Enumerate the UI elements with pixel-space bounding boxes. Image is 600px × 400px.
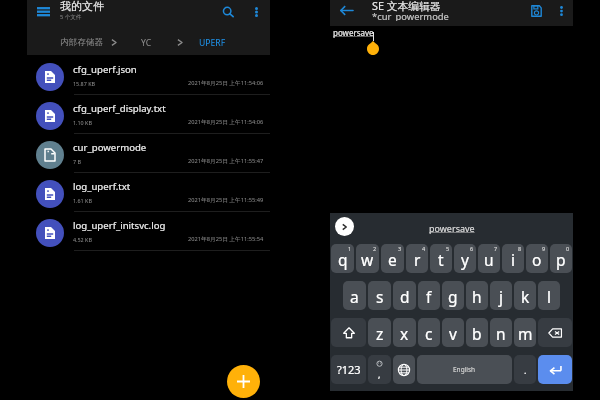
staticText: l bbox=[547, 286, 551, 307]
staticText: y bbox=[461, 249, 469, 270]
button[interactable]: 内部存储器 bbox=[60, 37, 103, 48]
button[interactable]: k bbox=[514, 281, 536, 310]
button[interactable]: YC bbox=[141, 37, 152, 49]
button[interactable]: Back bbox=[334, 0, 358, 21]
button[interactable]: Backspace bbox=[538, 318, 572, 347]
button[interactable]: f bbox=[418, 281, 440, 310]
staticText: u bbox=[484, 249, 494, 270]
button[interactable]: Change language bbox=[393, 355, 415, 384]
button[interactable]: English bbox=[417, 355, 512, 384]
button[interactable]: d bbox=[393, 281, 416, 310]
button[interactable]: More options bbox=[550, 0, 572, 22]
button[interactable]: 8 bbox=[502, 244, 524, 273]
button[interactable]: h bbox=[466, 281, 488, 310]
staticText: 4.52 KB bbox=[73, 236, 92, 243]
button[interactable]: v bbox=[442, 318, 464, 347]
staticText: q bbox=[338, 249, 348, 270]
button[interactable]: l bbox=[538, 281, 560, 310]
staticText: 6 bbox=[470, 245, 474, 252]
staticText: k bbox=[521, 286, 530, 307]
staticText: v bbox=[449, 323, 457, 344]
button[interactable]: Add bbox=[227, 365, 260, 398]
staticText: z bbox=[376, 323, 384, 344]
staticText: x bbox=[400, 323, 409, 344]
button[interactable]: Menu bbox=[32, 0, 54, 22]
staticText: cur_powermode bbox=[73, 141, 147, 154]
staticText: ?123 bbox=[337, 362, 361, 377]
staticText: 3 bbox=[398, 245, 402, 252]
button[interactable]: log_uperf.txt bbox=[27, 173, 270, 211]
staticText: cfg_uperf_display.txt bbox=[73, 102, 166, 115]
button[interactable]: 7 bbox=[478, 244, 500, 273]
staticText: 7 bbox=[494, 245, 498, 252]
button[interactable]: 0 bbox=[550, 244, 572, 273]
staticText: j bbox=[499, 286, 503, 307]
button[interactable]: 5 bbox=[430, 244, 452, 273]
staticText: SE 文本编辑器 bbox=[372, 0, 441, 13]
button[interactable]: z bbox=[368, 318, 391, 347]
staticText: 2 bbox=[373, 245, 377, 252]
staticText: log_uperf.txt bbox=[73, 180, 131, 193]
button[interactable]: Save bbox=[524, 1, 548, 21]
staticText: , bbox=[378, 368, 381, 380]
staticText: YC bbox=[141, 37, 152, 49]
staticText: g bbox=[448, 286, 458, 307]
staticText: *cur_powermode bbox=[372, 10, 449, 21]
staticText: English bbox=[453, 365, 476, 374]
staticText: 1.10 KB bbox=[73, 119, 92, 126]
staticText: i bbox=[511, 249, 515, 270]
staticText: 1.61 KB bbox=[73, 197, 92, 204]
staticText: 8 bbox=[518, 245, 522, 252]
staticText: . bbox=[524, 364, 527, 376]
staticText: p bbox=[556, 249, 566, 270]
button[interactable]: 1 bbox=[331, 244, 354, 273]
button[interactable]: More options bbox=[244, 0, 268, 24]
staticText: 4 bbox=[422, 245, 426, 252]
button[interactable]: c bbox=[418, 318, 440, 347]
button[interactable]: log_uperf_initsvc.log bbox=[27, 212, 270, 250]
button[interactable]: g bbox=[442, 281, 464, 310]
staticText: t bbox=[438, 249, 444, 270]
button[interactable]: Expand suggestions bbox=[335, 217, 354, 236]
button[interactable]: Enter bbox=[538, 355, 572, 384]
staticText: r bbox=[414, 249, 421, 270]
button[interactable]: 6 bbox=[454, 244, 476, 273]
staticText: 2021年8月25日 上午11:55:54 bbox=[188, 235, 264, 243]
button[interactable]: cfg_uperf_display.txt bbox=[27, 95, 270, 133]
button[interactable]: b bbox=[466, 318, 488, 347]
staticText: cfg_uperf.json bbox=[73, 63, 137, 76]
staticText: n bbox=[496, 323, 506, 344]
button[interactable]: n bbox=[490, 318, 512, 347]
staticText: 7 B bbox=[73, 158, 81, 165]
staticText: a bbox=[350, 286, 359, 307]
button[interactable]: Shift bbox=[331, 318, 366, 347]
staticText: 15.87 KB bbox=[73, 80, 96, 87]
button[interactable]: cfg_uperf.json bbox=[27, 56, 270, 94]
button[interactable]: j bbox=[490, 281, 512, 310]
button[interactable]: x bbox=[393, 318, 416, 347]
staticText: 2021年8月25日 上午11:55:47 bbox=[188, 157, 264, 165]
button[interactable]: Emoji and comma bbox=[368, 355, 391, 384]
staticText: e bbox=[388, 249, 397, 270]
button[interactable]: . bbox=[514, 355, 536, 384]
button[interactable]: 3 bbox=[381, 244, 404, 273]
staticText: o bbox=[532, 249, 542, 270]
button[interactable]: 9 bbox=[526, 244, 548, 273]
button[interactable]: ?123 bbox=[331, 355, 366, 384]
staticText: d bbox=[400, 286, 410, 307]
button[interactable]: a bbox=[343, 281, 366, 310]
button[interactable]: s bbox=[368, 281, 391, 310]
staticText: UPERF bbox=[199, 37, 226, 49]
button[interactable]: UPERF bbox=[199, 37, 226, 49]
staticText: 内部存储器 bbox=[60, 37, 103, 48]
staticText: 2021年8月25日 上午11:55:49 bbox=[188, 196, 264, 204]
button[interactable]: cur_powermode bbox=[27, 134, 270, 172]
button[interactable]: m bbox=[514, 318, 536, 347]
staticText: f bbox=[426, 286, 432, 307]
button[interactable]: Search bbox=[215, 0, 241, 25]
button[interactable]: 4 bbox=[406, 244, 428, 273]
staticText: m bbox=[518, 323, 533, 344]
staticText: log_uperf_initsvc.log bbox=[73, 219, 166, 232]
staticText: b bbox=[472, 323, 482, 344]
button[interactable]: 2 bbox=[356, 244, 379, 273]
